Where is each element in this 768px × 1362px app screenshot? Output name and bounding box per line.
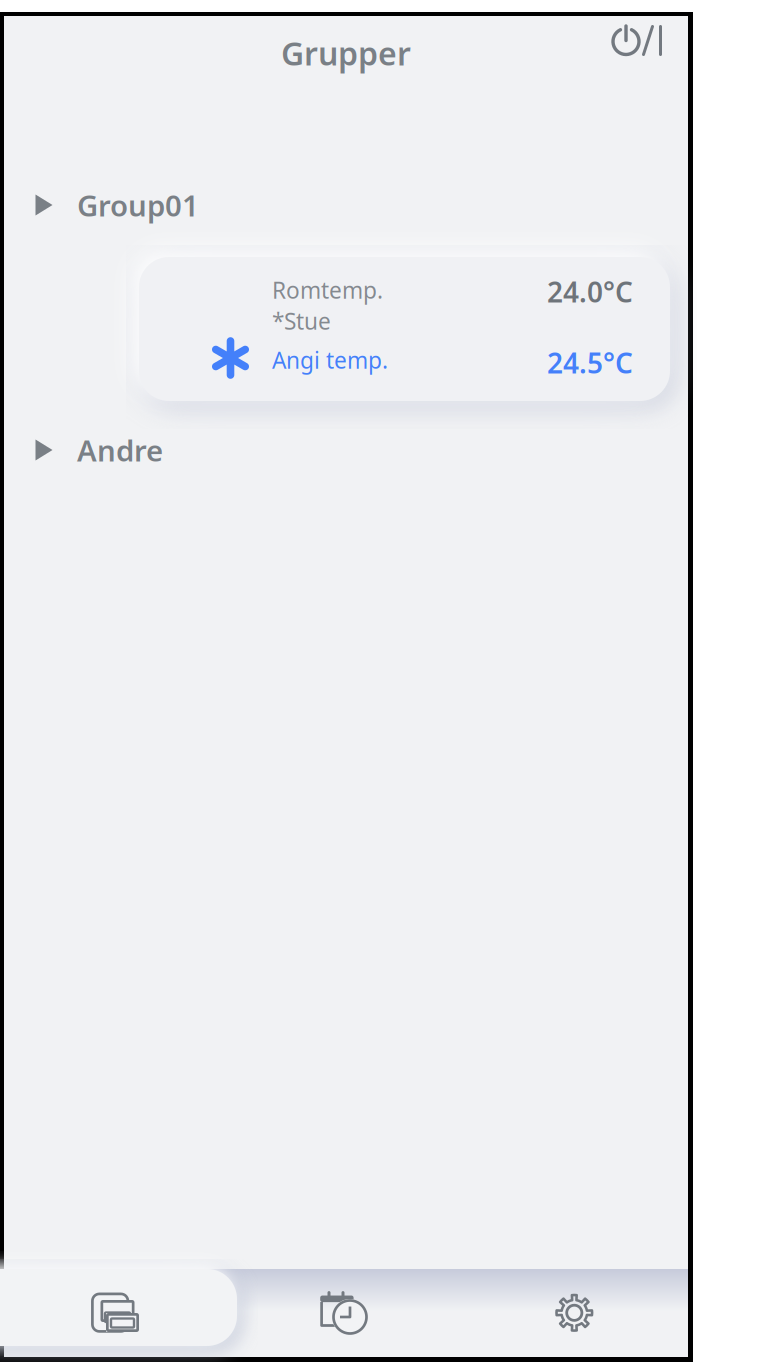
button[interactable]: Power <box>602 16 671 65</box>
staticText: 24.0°C <box>547 273 633 310</box>
staticText: *Stue <box>272 306 331 336</box>
staticText: Angi temp. <box>272 345 388 375</box>
staticText: 24.5°C <box>547 344 633 381</box>
button[interactable]: Grupper <box>226 28 466 78</box>
staticText: Grupper <box>281 32 411 74</box>
button[interactable]: Romtemp. <box>139 257 670 401</box>
staticText: Group01 <box>77 185 199 224</box>
staticText: Andre <box>77 430 163 469</box>
button[interactable]: Settings <box>460 1269 689 1357</box>
button[interactable]: Group01 <box>4 182 688 228</box>
button[interactable]: Andre <box>4 427 688 473</box>
staticText: Romtemp. <box>272 275 383 305</box>
button[interactable]: Schedule <box>230 1269 459 1357</box>
button[interactable]: Groups <box>1 1269 230 1357</box>
